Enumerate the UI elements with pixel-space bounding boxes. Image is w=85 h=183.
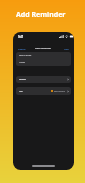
staticText: 9:41 [18,35,24,39]
staticText: List [19,90,23,93]
staticText: Reminders [54,90,66,93]
staticText: Details [19,78,27,81]
button[interactable]: Notes [16,59,71,66]
staticText: Demo ticket [19,54,32,57]
button[interactable]: List [16,87,71,95]
button[interactable]: Demo ticket [16,52,71,59]
button[interactable]: Details [16,76,71,83]
staticText: New Reminder [35,47,52,50]
button[interactable]: Cancel [13,47,31,50]
staticText: Add Reminder [16,10,66,20]
button[interactable]: Add [59,47,74,50]
staticText: Notes [19,61,26,64]
